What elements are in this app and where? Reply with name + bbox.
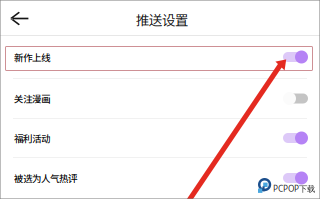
- button[interactable]: 福利活动: [0, 119, 320, 157]
- button[interactable]: 新作上线: [0, 36, 320, 78]
- button[interactable]: Back: [0, 0, 39, 35]
- staticText: 新作上线: [14, 50, 50, 64]
- button[interactable]: 被选为人气热评: [0, 158, 320, 198]
- staticText: 福利活动: [14, 131, 50, 145]
- staticText: 被选为人气热评: [14, 171, 77, 185]
- button[interactable]: 关注漫画: [0, 79, 320, 118]
- staticText: 关注漫画: [14, 92, 50, 105]
- staticText: PCPOP下载: [273, 183, 315, 194]
- staticText: 推送设置: [136, 10, 188, 29]
